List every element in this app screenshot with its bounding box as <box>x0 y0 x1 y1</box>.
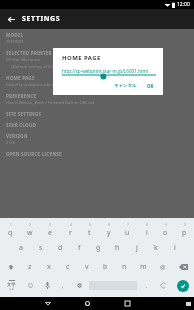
staticText: BT:Star Micronics <box>6 57 40 63</box>
button[interactable]: キャンセル <box>112 82 139 90</box>
staticText: s <box>39 243 43 253</box>
staticText: 6 <box>108 223 110 227</box>
button[interactable]: a <box>11 239 31 257</box>
button[interactable]: z <box>21 257 39 276</box>
button[interactable]: 7 <box>118 221 137 239</box>
button[interactable]: Home <box>75 297 100 310</box>
button[interactable]: 6 <box>99 221 118 239</box>
button[interactable]: Emoji <box>22 276 39 295</box>
button[interactable]: SITE SETTINGS <box>6 111 194 122</box>
staticText: n <box>122 262 127 272</box>
staticText: http://sp-webprint.star-m.jp/L6001.html <box>6 82 85 88</box>
staticText: 文字 <box>7 282 16 287</box>
button[interactable]: x <box>39 257 58 276</box>
button[interactable]: 1 <box>0 221 20 239</box>
staticText: i <box>146 228 148 238</box>
button[interactable]: 4 <box>60 221 80 239</box>
staticText: PREFERENCE <box>6 93 37 99</box>
staticText: z <box>28 262 32 272</box>
staticText: Home Button, Back / Forward Button URL l… <box>6 100 95 106</box>
button[interactable]: Undo <box>155 276 171 295</box>
staticText: TSP650II <box>6 39 24 45</box>
button[interactable]: s <box>31 239 51 257</box>
button[interactable]: Keyboard status <box>182 297 194 310</box>
staticText: 7 <box>127 223 129 227</box>
button[interactable]: 0 <box>175 221 194 239</box>
staticText: v <box>85 262 89 272</box>
staticText: u <box>125 228 130 238</box>
button[interactable]: @ <box>153 257 172 276</box>
staticText: (Default setting of Star's printer) <box>6 64 75 70</box>
staticText: あa1 <box>9 287 15 291</box>
button[interactable]: HOME PAGE <box>6 75 194 93</box>
staticText: キャンセル <box>114 83 137 89</box>
button[interactable]: OK <box>145 82 156 90</box>
button[interactable]: Switch input mode <box>0 276 22 295</box>
button[interactable]: k <box>146 239 165 257</box>
staticText: h <box>115 243 120 253</box>
button[interactable]: f <box>70 239 89 257</box>
staticText: c <box>66 262 70 272</box>
button[interactable]: Shift <box>0 257 21 276</box>
button[interactable]: STAR CLOUD <box>6 122 194 133</box>
staticText: @ <box>160 263 166 271</box>
staticText: d <box>58 243 63 253</box>
button[interactable]: , <box>55 276 71 295</box>
button[interactable]: h <box>108 239 127 257</box>
staticText: x <box>47 262 51 272</box>
button[interactable]: VERSION <box>6 133 194 151</box>
staticText: 5 <box>89 223 91 227</box>
staticText: SETTINGS <box>22 14 61 24</box>
button[interactable]: Backspace <box>172 257 194 276</box>
button[interactable]: Back <box>0 9 22 29</box>
button[interactable]: SELECTED PRINTER <box>6 50 194 75</box>
staticText: HOME PAGE <box>62 54 101 62</box>
button[interactable]: c <box>58 257 77 276</box>
staticText: t <box>88 228 91 238</box>
staticText: OK <box>147 83 154 89</box>
staticText: 3 <box>49 223 51 227</box>
staticText: w <box>27 228 33 238</box>
button[interactable]: Enter <box>177 280 189 292</box>
button[interactable]: n <box>115 257 134 276</box>
staticText: . <box>146 282 148 290</box>
staticText: m <box>140 262 147 272</box>
staticText: VERSION <box>6 133 28 139</box>
staticText: 9 <box>165 223 167 227</box>
button[interactable]: 3 <box>40 221 60 239</box>
button[interactable]: 2 <box>20 221 40 239</box>
staticText: f <box>78 243 81 253</box>
button[interactable]: 8 <box>137 221 156 239</box>
staticText: 4 <box>70 223 72 227</box>
button[interactable]: Back <box>36 297 60 310</box>
button[interactable]: 5 <box>80 221 99 239</box>
button[interactable]: PREFERENCE <box>6 93 194 111</box>
staticText: a <box>19 243 23 253</box>
button[interactable]: MODEL <box>6 32 194 50</box>
button[interactable]: b <box>96 257 115 276</box>
staticText: o <box>163 228 168 238</box>
button[interactable]: j <box>127 239 146 257</box>
button[interactable]: Voice input <box>39 276 55 295</box>
staticText: j <box>136 243 138 253</box>
button[interactable]: OPEN SOURCE LICENSE <box>6 151 194 162</box>
staticText: 8 <box>146 223 148 227</box>
button[interactable]: Recent apps <box>115 297 140 310</box>
staticText: 12:00 <box>177 1 190 8</box>
staticText: 2 <box>29 223 31 227</box>
staticText: q <box>8 228 13 238</box>
staticText: 0 <box>184 223 186 227</box>
staticText: 1 <box>10 223 12 227</box>
button[interactable]: m <box>134 257 153 276</box>
staticText: g <box>96 243 101 253</box>
button[interactable]: 9 <box>156 221 175 239</box>
button[interactable]: v <box>77 257 96 276</box>
staticText: SITE SETTINGS <box>6 111 42 117</box>
button[interactable]: g <box>89 239 108 257</box>
button[interactable]: l <box>165 239 184 257</box>
button[interactable]: d <box>51 239 70 257</box>
staticText: e <box>48 228 52 238</box>
button[interactable]: Settings <box>71 276 87 295</box>
